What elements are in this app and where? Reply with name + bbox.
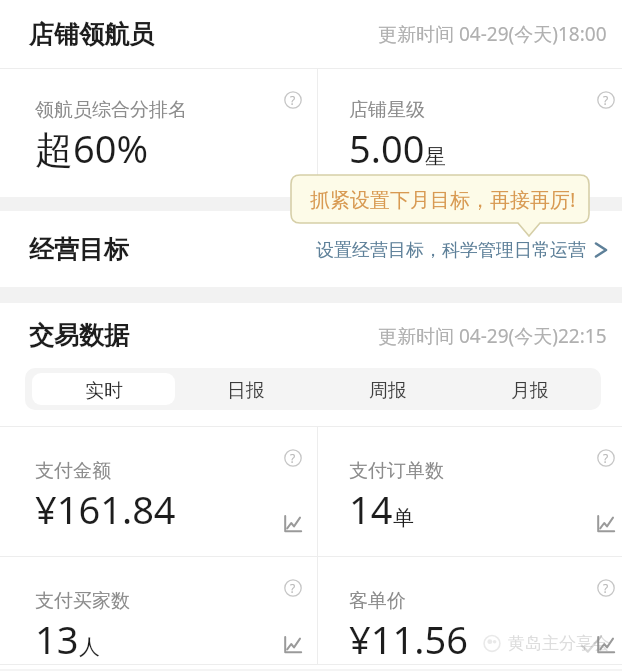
button[interactable]: 帮助 [284, 579, 302, 597]
staticText: 5.00 [349, 122, 425, 174]
button[interactable]: 支付金额 [0, 427, 317, 556]
staticText: 经营目标 [29, 234, 129, 265]
staticText: 抓紧设置下月目标，再接再厉! [310, 186, 576, 213]
button[interactable]: 设置经营目标，科学管理日常运营 [316, 238, 622, 261]
staticText: 13 [35, 613, 79, 664]
staticText: 星 [425, 144, 446, 170]
staticText: 设置经营目标，科学管理日常运营 [316, 239, 586, 262]
staticText: ? [603, 580, 609, 596]
button[interactable]: 查看趋势图 [282, 514, 302, 534]
staticText: 更新时间 04-29(今天)18:00 [378, 21, 607, 47]
button[interactable]: 周报 [317, 373, 459, 405]
staticText: 周报 [369, 379, 407, 403]
button[interactable]: 店铺星级 [318, 69, 622, 197]
staticText: 店铺星级 [349, 98, 425, 122]
staticText: 日报 [227, 379, 265, 403]
staticText: 更新时间 04-29(今天)22:15 [378, 323, 607, 349]
button[interactable]: 支付订单数 [318, 427, 622, 556]
staticText: 领航员综合分排名 [35, 98, 187, 122]
staticText: 支付金额 [35, 459, 111, 483]
staticText: ? [290, 450, 296, 466]
button[interactable]: 帮助 [284, 449, 302, 467]
staticText: 14 [349, 483, 393, 535]
button[interactable]: 日报 [175, 373, 317, 405]
button[interactable]: 帮助 [597, 579, 615, 597]
staticText: 实时 [85, 379, 123, 403]
button[interactable]: 帮助 [284, 91, 302, 109]
button[interactable]: 查看趋势图 [595, 514, 615, 534]
staticText: 交易数据 [29, 320, 129, 351]
staticText: 单 [393, 505, 414, 531]
staticText: 店铺领航员 [29, 19, 154, 50]
staticText: ? [290, 92, 296, 108]
button[interactable]: 支付买家数 [0, 557, 317, 664]
staticText: 月报 [511, 379, 549, 403]
button[interactable]: 查看趋势图 [282, 635, 302, 655]
staticText: ? [290, 580, 296, 596]
staticText: 支付订单数 [349, 459, 444, 483]
button[interactable]: 查看趋势图 [595, 635, 615, 655]
staticText: ? [603, 450, 609, 466]
button[interactable]: 帮助 [597, 91, 615, 109]
staticText: 支付买家数 [35, 589, 130, 613]
button[interactable]: 帮助 [597, 449, 615, 467]
staticText: 黄岛主分享会 [508, 633, 610, 654]
staticText: 超60% [35, 122, 149, 174]
staticText: ¥11.56 [349, 613, 468, 664]
button[interactable]: 月报 [459, 373, 601, 405]
button[interactable]: 实时 [32, 373, 175, 405]
staticText: ¥161.84 [35, 483, 176, 535]
staticText: ? [603, 92, 609, 108]
button[interactable]: 领航员综合分排名 [0, 69, 317, 197]
staticText: 客单价 [349, 589, 406, 613]
staticText: 人 [79, 634, 100, 660]
button[interactable]: 客单价 [318, 557, 622, 664]
